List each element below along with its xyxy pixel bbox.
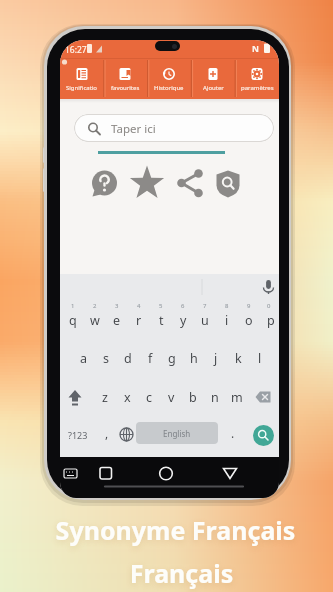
staticText: favourites [111,84,140,92]
button[interactable]: c [138,388,160,406]
button[interactable]: Ajouter [191,59,235,99]
staticText: g [168,350,176,367]
button[interactable]: j [205,349,227,367]
button[interactable]: m [226,388,248,406]
button[interactable]: Historique [147,59,191,99]
button[interactable]: t [150,311,172,329]
staticText: f [148,350,153,367]
button[interactable]: l [249,349,271,367]
button[interactable]: z [94,388,116,406]
button[interactable]: ?123 [68,429,88,441]
button[interactable]: d [117,349,139,367]
staticText: t [159,312,164,329]
staticText: Ajouter [203,84,224,92]
staticText: e [113,312,121,329]
button[interactable]: x [116,388,138,406]
button[interactable] [176,167,206,197]
button[interactable]: n [204,388,226,406]
button[interactable]: f [139,349,161,367]
staticText: 1 [71,302,75,310]
button[interactable]: Significatio [60,59,103,99]
button[interactable] [133,167,163,197]
button[interactable]: paramètres [235,59,279,99]
staticText: w [90,312,100,329]
staticText: b [189,389,197,406]
button[interactable]: i [216,311,238,329]
button[interactable]: Taper ici [74,114,274,142]
staticText: j [214,350,218,367]
button[interactable] [60,463,86,485]
staticText: i [225,312,229,329]
staticText: 2 [93,302,97,310]
button[interactable]: h [183,349,205,367]
staticText: 8 [225,302,229,310]
button[interactable]: p [260,311,279,329]
button[interactable]: v [160,388,182,406]
staticText: 7 [203,302,207,310]
button[interactable] [253,425,274,446]
staticText: N [252,43,259,55]
button[interactable]: a [73,349,95,367]
staticText: r [136,312,142,329]
staticText: 6 [181,302,185,310]
staticText: d [124,350,132,367]
button[interactable]: q [62,311,84,329]
button[interactable] [258,277,279,297]
staticText: 16:27 [65,44,87,56]
button[interactable] [90,167,120,197]
button[interactable]: o [238,311,260,329]
button[interactable]: e [106,311,128,329]
staticText: Synonyme Français [9,513,333,547]
staticText: u [201,312,209,329]
staticText: c [146,389,153,406]
button[interactable]: w [84,311,106,329]
staticText: s [103,350,109,367]
button[interactable]: u [194,311,216,329]
button[interactable]: favourites [103,59,147,99]
staticText: English [163,428,191,439]
staticText: paramètres [241,84,274,92]
staticText: h [190,350,198,367]
staticText: 0 [267,302,271,310]
staticText: p [267,312,275,329]
button[interactable]: , [105,425,109,441]
staticText: Taper ici [111,121,156,137]
staticText: 4 [137,302,141,310]
staticText: v [168,389,175,406]
button[interactable]: s [95,349,117,367]
staticText: 9 [247,302,251,310]
staticText: l [258,350,262,367]
button[interactable]: b [182,388,204,406]
staticText: k [235,350,242,367]
staticText: x [124,389,131,406]
button[interactable] [214,167,244,197]
button[interactable]: . [231,425,235,441]
staticText: q [69,312,77,329]
staticText: 3 [115,302,119,310]
button[interactable]: r [128,311,150,329]
staticText: o [245,312,253,329]
staticText: m [231,389,243,406]
staticText: y [180,312,187,329]
button[interactable]: English [136,422,218,444]
staticText: Significatio [66,84,97,92]
staticText: Français [15,556,333,590]
staticText: n [211,389,219,406]
staticText: z [102,389,108,406]
button[interactable]: y [172,311,194,329]
staticText: a [80,350,88,367]
staticText: Historique [154,84,184,92]
button[interactable]: g [161,349,183,367]
button[interactable]: k [227,349,249,367]
staticText: 5 [159,302,163,310]
